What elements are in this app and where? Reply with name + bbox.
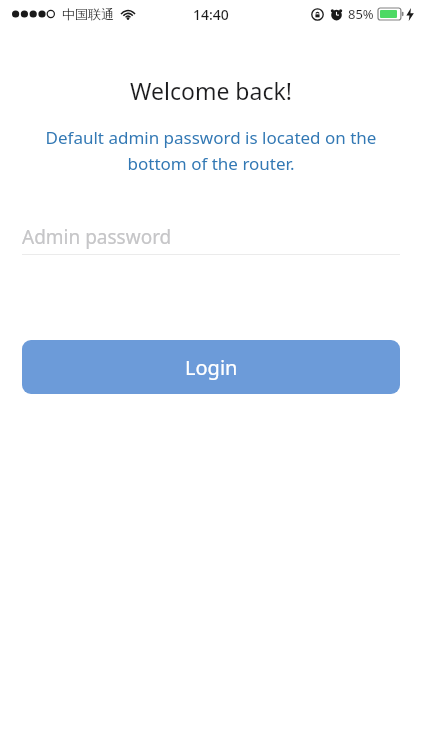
- staticText: Default admin password is located on the…: [16, 126, 406, 175]
- staticText: 14:40: [193, 5, 229, 24]
- button[interactable]: Admin password: [22, 220, 400, 255]
- staticText: Login: [185, 354, 238, 381]
- staticText: Welcome back!: [130, 75, 292, 106]
- other: Alarm: [330, 8, 343, 21]
- staticText: 85%: [348, 5, 374, 23]
- staticText: Admin password: [22, 224, 172, 250]
- button[interactable]: Login: [22, 340, 400, 394]
- staticText: 中国联通: [62, 6, 114, 22]
- other: Rotation lock: [311, 8, 324, 21]
